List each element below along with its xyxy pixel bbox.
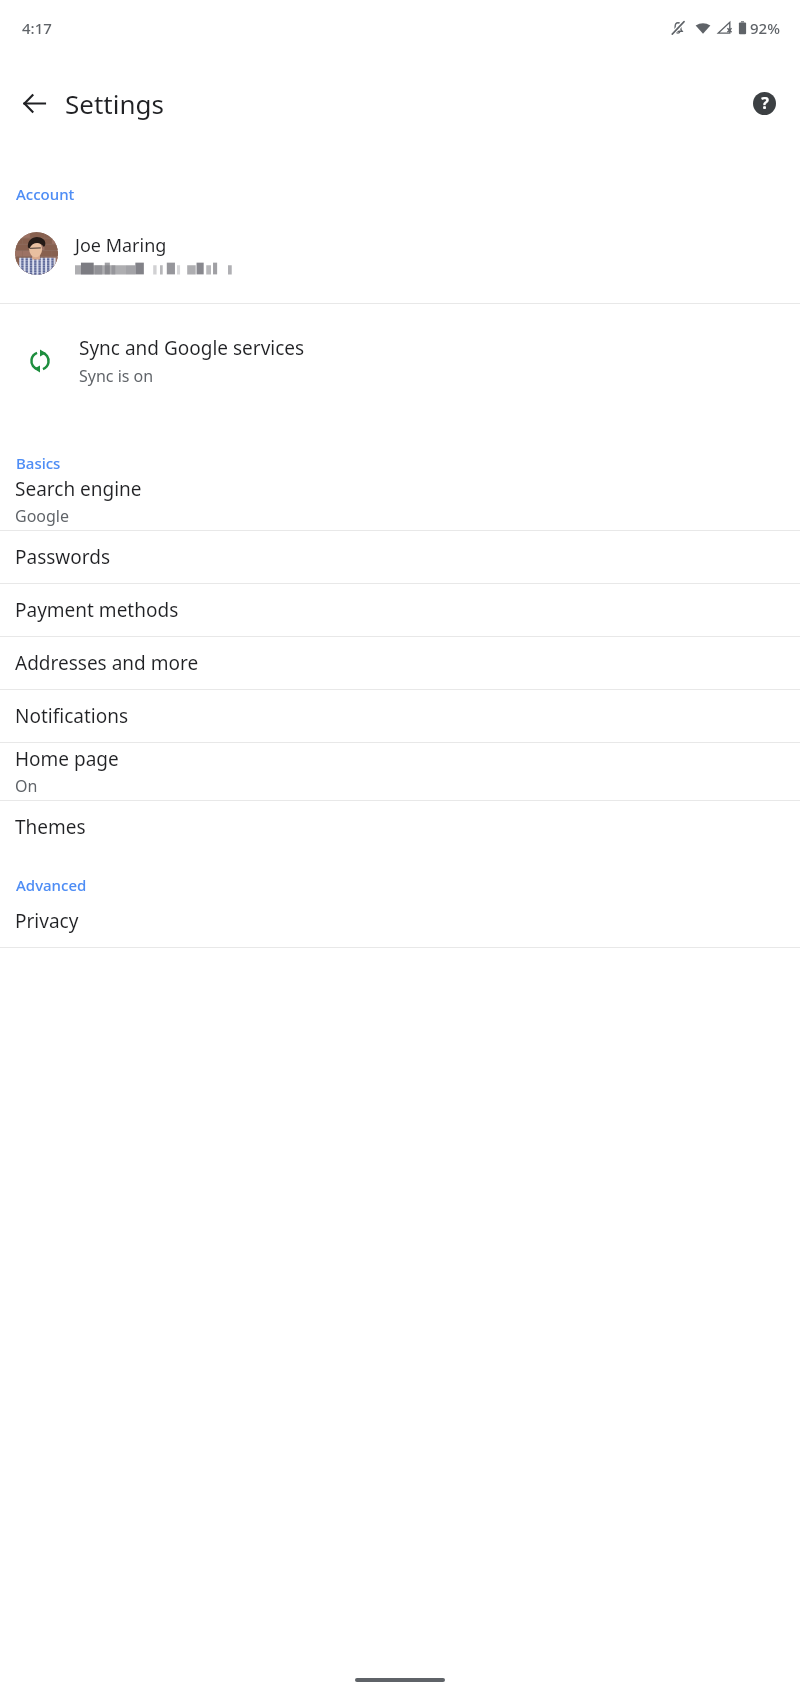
button[interactable]: Back — [10, 79, 58, 127]
staticText: Settings — [65, 86, 164, 121]
staticText: ? — [761, 92, 769, 114]
staticText: Search engine — [15, 476, 142, 502]
staticText: Advanced — [16, 875, 87, 895]
button[interactable]: Home page — [0, 743, 800, 800]
button[interactable]: Addresses and more — [0, 637, 800, 689]
staticText: Sync is on — [79, 365, 154, 387]
button[interactable]: Sync and Google services — [0, 304, 800, 417]
staticText: Addresses and more — [15, 650, 199, 676]
staticText: Account — [16, 184, 75, 204]
staticText: Sync and Google services — [79, 335, 305, 361]
staticText: On — [15, 775, 38, 797]
staticText: Themes — [15, 814, 86, 840]
button[interactable]: Passwords — [0, 531, 800, 583]
button[interactable]: Themes — [0, 801, 800, 853]
button[interactable]: Joe Maring — [0, 204, 800, 303]
button[interactable]: Help — [740, 79, 788, 127]
button[interactable]: Payment methods — [0, 584, 800, 636]
button[interactable]: Privacy — [0, 895, 800, 947]
button[interactable]: Notifications — [0, 690, 800, 742]
staticText: 4:17 — [22, 18, 52, 38]
staticText: 92% — [750, 18, 780, 38]
button[interactable]: Search engine — [0, 473, 800, 530]
staticText: Privacy — [15, 908, 79, 934]
staticText: Passwords — [15, 544, 111, 570]
staticText: Notifications — [15, 703, 129, 729]
staticText: Basics — [16, 453, 61, 473]
staticText: Home page — [15, 746, 119, 772]
staticText: Google — [15, 505, 70, 527]
staticText: Payment methods — [15, 597, 179, 623]
staticText: Joe Maring — [75, 233, 167, 258]
